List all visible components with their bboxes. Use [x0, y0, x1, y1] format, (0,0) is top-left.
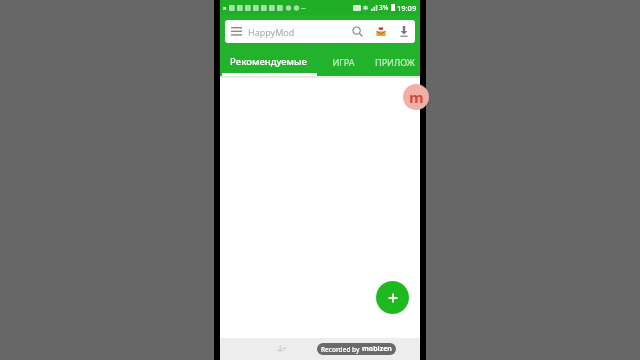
staticText: ИГРА	[332, 56, 355, 68]
staticText: ✻	[363, 4, 369, 11]
staticText: я	[223, 4, 227, 12]
button[interactable]: Add	[376, 281, 409, 314]
button[interactable]: Downloads	[392, 20, 415, 43]
staticText: HappyMod	[248, 26, 295, 38]
button[interactable]: Menu	[225, 20, 248, 43]
button[interactable]: Recents	[272, 340, 290, 358]
button[interactable]: HappyMod	[248, 20, 346, 43]
staticText: 3%	[379, 3, 389, 12]
button[interactable]: Рекомендуемые	[220, 47, 317, 76]
staticText: ПРИЛОЖ	[375, 56, 415, 68]
staticText: Recorded by	[321, 345, 360, 354]
button[interactable]: Search	[346, 20, 369, 43]
staticText: ···	[301, 4, 306, 12]
button[interactable]: HappyMod badge	[403, 84, 429, 110]
staticText: mobizen	[362, 344, 392, 354]
staticText: Рекомендуемые	[230, 55, 307, 68]
staticText: m	[409, 87, 424, 107]
button[interactable]: Messages	[369, 20, 392, 43]
button[interactable]: ПРИЛОЖ	[369, 47, 420, 76]
button[interactable]: ИГРА	[317, 47, 369, 76]
staticText: 19:09	[397, 3, 417, 13]
